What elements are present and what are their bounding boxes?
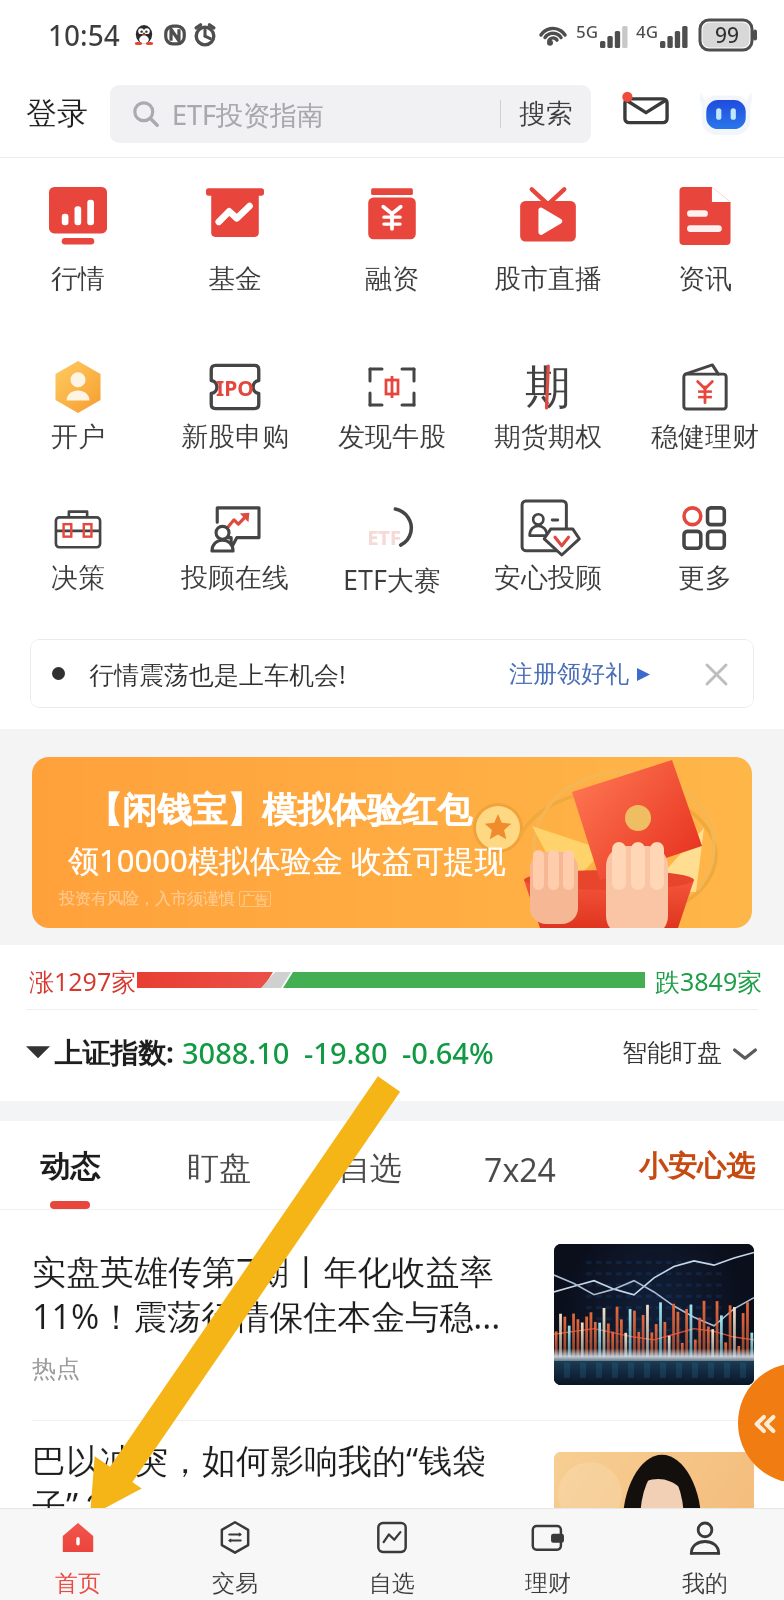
button[interactable]: ETF投资指南 [110, 85, 591, 143]
staticText: Baidu [604, 1531, 701, 1577]
staticText: ETF投资指南 [172, 96, 325, 133]
button[interactable] [300, 1121, 440, 1210]
staticText: 【闲钱宝】模拟体验红包 [87, 788, 472, 832]
button[interactable]: 【闲钱宝】模拟体验红包 [32, 757, 752, 928]
button[interactable] [322, 1509, 462, 1600]
staticText: 期货期权 [468, 420, 628, 454]
staticText: 智能盯盘 [622, 1037, 722, 1068]
staticText: 热点 [32, 1354, 80, 1384]
staticText: 盯盘 [139, 1148, 299, 1188]
button[interactable] [0, 1397, 784, 1510]
staticText: -0.64% [402, 1033, 494, 1072]
button[interactable] [165, 1509, 305, 1600]
staticText: 5G [576, 20, 599, 43]
button[interactable] [635, 488, 775, 605]
staticText: 行情 [0, 262, 158, 296]
staticText: 首页 [8, 1569, 148, 1598]
staticText: 自选 [290, 1148, 450, 1188]
staticText: 行情震荡也是上车机会! [89, 657, 346, 691]
staticText: 广告 [242, 891, 268, 907]
staticText: 决策 [0, 561, 158, 595]
button[interactable] [0, 1121, 140, 1210]
staticText: 投顾在线 [155, 561, 315, 595]
staticText: 投资有风险，入市须谨慎 [59, 889, 235, 909]
staticText: 领10000模拟体验金 收益可提现 [68, 839, 506, 881]
staticText: 登录 [26, 94, 88, 133]
staticText: 10:54 [48, 16, 120, 54]
staticText: 我的 [635, 1569, 775, 1598]
staticText: IPO [195, 374, 275, 403]
staticText: 稳健理财 [625, 420, 784, 454]
button[interactable]: 智能盯盘 [622, 1027, 758, 1078]
button[interactable]: Close [696, 654, 736, 694]
button[interactable] [478, 347, 618, 464]
staticText: 跌3849家 [655, 964, 763, 998]
staticText: 发现牛股 [312, 420, 472, 454]
button[interactable] [8, 1509, 148, 1600]
button[interactable] [0, 1210, 784, 1387]
staticText: 涨1297家 [29, 964, 137, 998]
staticText: 新股申购 [155, 420, 315, 454]
staticText: 经验 [693, 1533, 749, 1568]
button[interactable] [635, 1509, 775, 1600]
button[interactable]: Messages [614, 82, 678, 146]
staticText: 股市直播 [468, 262, 628, 296]
button[interactable] [450, 1121, 590, 1210]
button[interactable]: 登录 [18, 84, 96, 143]
staticText: 巴以冲突，如何影响我的“钱袋子”？ [32, 1437, 532, 1528]
staticText: 融资 [312, 262, 472, 296]
button[interactable] [8, 488, 148, 605]
button[interactable] [165, 176, 305, 306]
button[interactable] [478, 176, 618, 306]
staticText: ETF大赛 [312, 561, 472, 598]
staticText: 7x24 [440, 1148, 600, 1192]
button[interactable]: AI assistant [697, 85, 755, 143]
staticText: 注册领好礼 [509, 659, 629, 689]
staticText: 开户 [0, 420, 158, 454]
button[interactable] [627, 1121, 767, 1210]
staticText: 交易 [165, 1569, 305, 1598]
staticText: 自选 [322, 1569, 462, 1598]
button[interactable] [322, 347, 462, 464]
staticText: 期 [508, 359, 588, 417]
staticText: 搜索 [519, 97, 573, 131]
staticText: -19.80 [304, 1033, 388, 1072]
staticText: 小安心选 [617, 1148, 777, 1185]
button[interactable]: Collapse [738, 1363, 784, 1483]
button[interactable]: 行情震荡也是上车机会! [30, 639, 754, 708]
staticText: 4G [636, 20, 659, 43]
button[interactable] [322, 488, 462, 605]
staticText: 基金 [155, 262, 315, 296]
staticText: 理财 [478, 1569, 618, 1598]
button[interactable] [635, 347, 775, 464]
staticText: 99 [715, 21, 740, 50]
staticText: 3088.10 [182, 1033, 290, 1072]
staticText: jingyan.baidu.com [604, 1560, 752, 1583]
staticText: ETF [344, 524, 424, 551]
button[interactable]: 注册领好礼 [509, 651, 650, 697]
staticText: 动态 [0, 1148, 150, 1186]
staticText: 上证指数: [54, 1033, 174, 1071]
staticText: 更多 [625, 561, 784, 595]
button[interactable] [165, 347, 305, 464]
staticText: 资讯 [625, 262, 784, 296]
button[interactable] [635, 176, 775, 306]
button[interactable] [149, 1121, 289, 1210]
button[interactable] [478, 1509, 618, 1600]
button[interactable] [478, 488, 618, 605]
staticText: 实盘英雄传第7期丨年化收益率11%！震荡行情保住本金与稳... [32, 1248, 532, 1339]
button[interactable] [322, 176, 462, 306]
button[interactable] [8, 347, 148, 464]
staticText: 安心投顾 [468, 561, 628, 595]
button[interactable] [8, 176, 148, 306]
button[interactable] [165, 488, 305, 605]
